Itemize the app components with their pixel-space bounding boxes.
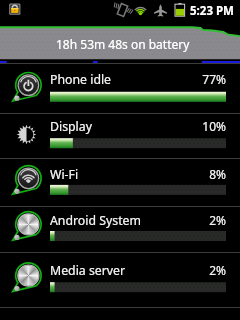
button[interactable]: Phone idle <box>0 63 240 113</box>
button[interactable]: Media server <box>0 252 240 307</box>
staticText: 77% <box>146 71 226 87</box>
button[interactable]: Android System <box>0 206 240 252</box>
button[interactable]: 18h 53m 48s on battery <box>0 26 240 64</box>
staticText: 8% <box>146 166 226 182</box>
staticText: Wi-Fi <box>50 166 79 183</box>
staticText: 18h 53m 48s on battery <box>56 36 190 52</box>
staticText: Media server <box>50 262 126 279</box>
staticText: 10% <box>146 118 226 134</box>
button[interactable]: Display <box>0 113 240 158</box>
staticText: Android System <box>50 212 142 229</box>
staticText: Display <box>50 118 92 135</box>
staticText: 2% <box>146 212 226 228</box>
staticText: 2% <box>146 262 226 278</box>
staticText: 5:23 PM <box>190 3 234 19</box>
button[interactable]: Wi-Fi <box>0 158 240 207</box>
staticText: Phone idle <box>50 71 112 88</box>
